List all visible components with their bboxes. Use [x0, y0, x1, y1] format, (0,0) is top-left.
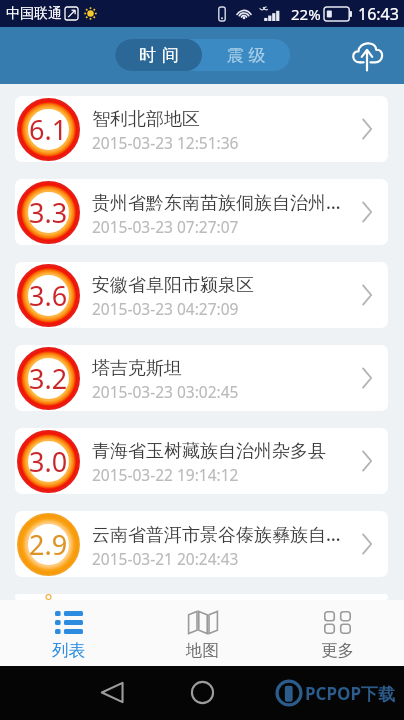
button[interactable]: 地图: [135, 600, 269, 666]
button[interactable]: 3.3: [15, 179, 388, 245]
staticText: 云南省普洱市景谷傣族彝族自…: [92, 522, 341, 547]
staticText: 贵州省黔东南苗族侗族自治州…: [92, 190, 341, 215]
button[interactable]: 更多: [270, 600, 404, 666]
staticText: 2.8: [29, 594, 68, 600]
staticText: 16:43: [358, 3, 399, 25]
staticText: 智利北部地区: [92, 108, 200, 131]
staticText: 2015-03-23 12:51:36: [92, 132, 239, 153]
staticText: 3.2: [29, 360, 68, 397]
staticText: 中国联通: [6, 5, 62, 23]
button[interactable]: Upload: [345, 34, 389, 78]
staticText: 塔吉克斯坦: [92, 357, 182, 380]
staticText: 2015-03-23 07:27:07: [92, 216, 239, 237]
button[interactable]: 时间: [115, 39, 202, 71]
staticText: 2015-03-22 19:14:12: [92, 464, 239, 485]
staticText: PCPOP下载: [305, 682, 396, 705]
staticText: 2.9: [29, 526, 68, 563]
staticText: 2015-03-21 20:24:43: [92, 548, 239, 569]
staticText: 3.6: [29, 277, 68, 314]
button[interactable]: 3.2: [15, 345, 388, 411]
staticText: 22%: [291, 4, 321, 24]
button[interactable]: Home: [180, 670, 225, 715]
button[interactable]: 3.0: [15, 428, 388, 494]
staticText: 震级: [224, 45, 268, 66]
button[interactable]: 6.1: [15, 96, 388, 162]
staticText: 更多: [321, 640, 354, 661]
button[interactable]: 2.9: [15, 511, 388, 577]
staticText: 安徽省阜阳市颍泉区: [92, 274, 254, 297]
staticText: 3.0: [29, 443, 68, 480]
button[interactable]: 震级: [202, 39, 290, 71]
button[interactable]: 2.8: [15, 594, 388, 600]
button[interactable]: Back: [89, 670, 134, 715]
staticText: 列表: [52, 640, 85, 661]
staticText: 时间: [136, 45, 182, 66]
staticText: 青海省玉树藏族自治州杂多县: [92, 440, 326, 463]
staticText: 3.3: [29, 194, 68, 231]
staticText: 地图: [186, 640, 219, 661]
staticText: 2015-03-23 03:02:45: [92, 381, 239, 402]
staticText: 6.1: [29, 111, 68, 148]
button[interactable]: 列表: [1, 600, 135, 666]
button[interactable]: 3.6: [15, 262, 388, 328]
staticText: 2015-03-23 04:27:09: [92, 298, 239, 319]
